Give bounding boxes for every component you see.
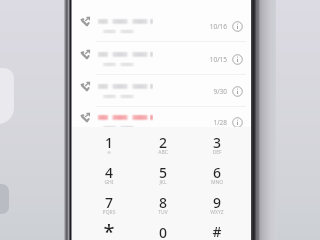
staticText: 10/16 [187,22,227,31]
staticText: WXYZ [190,209,244,216]
button[interactable]: Call details [230,115,244,129]
staticText: 2 [136,133,190,152]
button[interactable]: * [82,217,136,240]
button[interactable]: 10/15 [72,43,251,75]
button[interactable]: 9 [190,187,244,217]
staticText: * [82,218,136,240]
button[interactable]: 3 [190,127,244,157]
button[interactable]: Call details [230,52,244,66]
button[interactable]: 9/30 [72,75,251,107]
staticText: 9 [190,193,244,212]
staticText: 10/15 [187,55,227,64]
button[interactable]: 7 [82,187,136,217]
staticText: 4 [82,163,136,182]
staticText: ∞ [82,149,136,155]
staticText: MNO [190,179,244,186]
button[interactable]: # [190,217,244,240]
button[interactable]: 5 [136,157,190,187]
staticText: 9/30 [187,87,227,96]
button[interactable]: 8 [136,187,190,217]
staticText: 1/28 [187,118,227,127]
button[interactable]: 1 [82,127,136,157]
button[interactable]: 4 [82,157,136,187]
staticText: 8 [136,193,190,212]
staticText: JKL [136,179,190,186]
button[interactable]: 10/16 [72,10,251,42]
staticText: 1 [82,133,136,152]
button[interactable]: Call details [230,84,244,98]
staticText: 0 [136,223,190,240]
button[interactable]: 2 [136,127,190,157]
button[interactable]: Call details [230,19,244,33]
staticText: PQRS [82,209,136,216]
button[interactable]: 1/28 [72,106,251,138]
button[interactable]: 0 [136,217,190,240]
button[interactable]: 6 [190,157,244,187]
staticText: 5 [136,163,190,182]
staticText: 6 [190,163,244,182]
staticText: 3 [190,133,244,152]
staticText: # [190,222,244,240]
staticText: ABC [136,149,190,156]
staticText: DEF [190,149,244,156]
staticText: GHI [82,179,136,186]
staticText: 7 [82,193,136,212]
staticText: TUV [136,209,190,216]
